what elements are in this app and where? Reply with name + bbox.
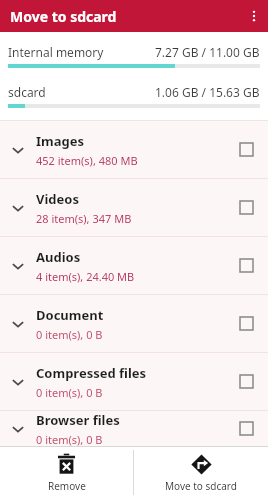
staticText: Move to sdcard <box>165 479 237 493</box>
staticText: Audios <box>36 248 81 266</box>
staticText: Images <box>36 132 85 150</box>
button[interactable]: Document <box>0 295 268 352</box>
button[interactable]: Select Compressed files <box>224 353 268 410</box>
button[interactable]: Select Images <box>224 121 268 178</box>
button[interactable]: Audios <box>0 237 268 294</box>
button[interactable]: Browser files <box>0 411 268 446</box>
staticText: Remove <box>48 479 86 493</box>
staticText: 1.06 GB / 15.63 GB <box>155 84 260 100</box>
staticText: Browser files <box>36 411 120 429</box>
staticText: sdcard <box>8 84 155 100</box>
staticText: Move to sdcard <box>10 7 117 26</box>
button[interactable]: Select Audios <box>224 237 268 294</box>
staticText: 0 item(s), 0 B <box>36 327 103 342</box>
button[interactable]: Compressed files <box>0 353 268 410</box>
staticText: 0 item(s), 0 B <box>36 432 103 446</box>
staticText: Videos <box>36 190 79 208</box>
staticText: 4 item(s), 24.40 MB <box>36 269 135 284</box>
button[interactable]: Select Browser files <box>224 411 268 446</box>
staticText: 28 item(s), 347 MB <box>36 211 132 226</box>
button[interactable]: Images <box>0 121 268 178</box>
button[interactable]: More options <box>240 2 268 30</box>
staticText: 7.27 GB / 11.00 GB <box>155 44 260 60</box>
button[interactable]: Select Videos <box>224 179 268 236</box>
staticText: 452 item(s), 480 MB <box>36 153 138 168</box>
button[interactable]: Select Document <box>224 295 268 352</box>
staticText: Document <box>36 306 104 324</box>
button[interactable]: Move to sdcard <box>134 447 268 498</box>
staticText: Internal memory <box>8 44 155 60</box>
staticText: Compressed files <box>36 364 147 382</box>
button[interactable]: Remove <box>0 447 133 498</box>
button[interactable]: Videos <box>0 179 268 236</box>
staticText: 0 item(s), 0 B <box>36 385 103 400</box>
